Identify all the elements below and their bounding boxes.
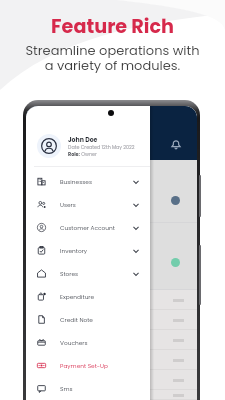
staticText: Date Created 12th May 2022	[68, 144, 135, 151]
staticText: Vouchers	[60, 339, 140, 347]
staticText: Expenditure	[60, 293, 140, 301]
staticText: Payment Set-Up	[60, 362, 140, 370]
staticText: Sms	[60, 385, 140, 393]
button[interactable]: Credit Note	[26, 308, 150, 331]
button[interactable]	[26, 390, 197, 400]
button[interactable]	[26, 310, 197, 330]
button[interactable]: Stores	[26, 262, 150, 285]
button[interactable]	[26, 370, 197, 390]
staticText: Users	[60, 201, 132, 209]
button[interactable]	[26, 330, 197, 350]
staticText: Customer Account	[60, 224, 132, 232]
staticText: Owner	[80, 151, 97, 158]
staticText: Streamline operations with a variety of …	[25, 41, 200, 75]
staticText: Businesses	[60, 178, 132, 186]
button[interactable]: Vouchers	[26, 331, 150, 354]
button[interactable]	[26, 350, 197, 370]
staticText: Monthly	[35, 166, 55, 173]
button[interactable]: John Doe	[26, 134, 150, 158]
button[interactable]: Monthly	[35, 166, 61, 173]
button[interactable]: Payment Set-Up	[26, 354, 150, 377]
button[interactable]: Sms	[26, 377, 150, 400]
button[interactable]	[26, 290, 197, 310]
button[interactable]: Users	[26, 193, 150, 216]
button[interactable]: Inventory	[26, 239, 150, 262]
staticText: Role:	[68, 151, 80, 158]
button[interactable]: Customer Account	[26, 216, 150, 239]
button[interactable]: Notifications	[169, 137, 183, 151]
button[interactable]: Expenditure	[26, 285, 150, 308]
staticText: Feature Rich	[51, 13, 174, 40]
staticText: John Doe	[68, 135, 98, 144]
staticText: Inventory	[60, 247, 132, 255]
staticText: Stores	[60, 270, 132, 278]
staticText: Credit Note	[60, 316, 140, 324]
button[interactable]: Businesses	[26, 170, 150, 193]
